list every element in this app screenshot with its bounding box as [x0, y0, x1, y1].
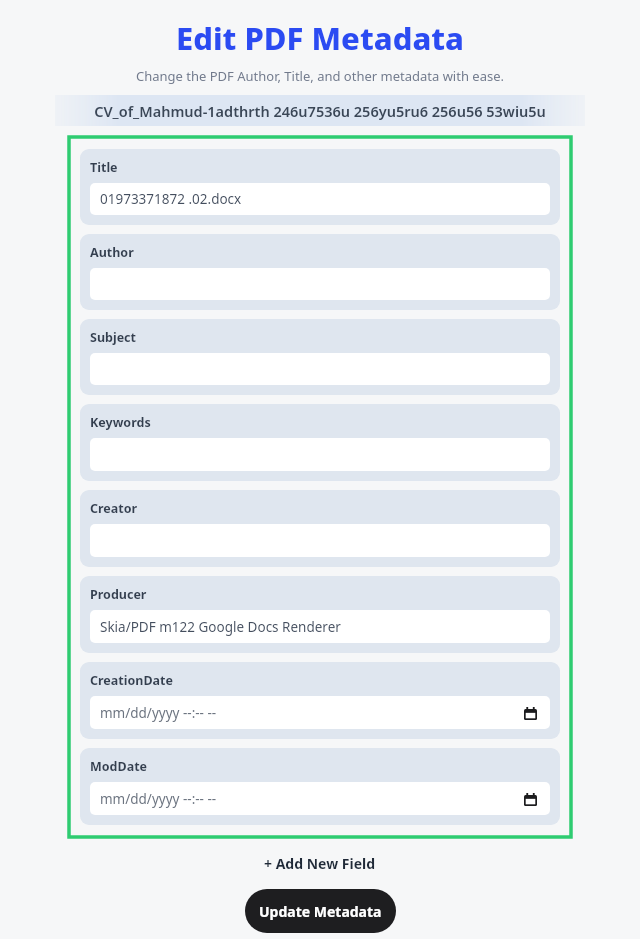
button[interactable]: Creator: [80, 490, 560, 567]
staticText: Change the PDF Author, Title, and other …: [0, 67, 640, 85]
staticText: Creator: [90, 500, 138, 517]
staticText: Skia/PDF m122 Google Docs Renderer: [100, 618, 341, 636]
staticText: Producer: [90, 586, 147, 603]
button[interactable]: Producer: [80, 576, 560, 653]
button[interactable]: Pick date: [520, 789, 540, 809]
staticText: mm/dd/yyyy --:-- --: [100, 790, 217, 808]
button[interactable]: CreationDate: [80, 662, 560, 739]
button[interactable]: + Add New Field: [256, 851, 384, 876]
staticText: 01973371872 .02.docx: [100, 190, 242, 208]
staticText: CV_of_Mahmud-1adthrth 246u7536u 256yu5ru…: [94, 101, 546, 121]
staticText: CreationDate: [90, 672, 173, 689]
button[interactable]: Keywords: [80, 404, 560, 481]
staticText: Author: [90, 244, 134, 261]
button[interactable]: Author: [80, 234, 560, 310]
staticText: + Add New Field: [264, 854, 376, 873]
button[interactable]: Title: [80, 149, 560, 225]
button[interactable]: Update Metadata: [245, 889, 396, 933]
button[interactable]: ModDate: [80, 748, 560, 825]
button[interactable]: Subject: [80, 319, 560, 395]
staticText: Subject: [90, 329, 136, 346]
staticText: ModDate: [90, 758, 148, 775]
button[interactable]: Pick date: [520, 703, 540, 723]
staticText: Title: [90, 159, 118, 176]
staticText: Keywords: [90, 414, 151, 431]
staticText: Update Metadata: [259, 902, 382, 921]
staticText: Edit PDF Metadata: [0, 17, 640, 59]
staticText: mm/dd/yyyy --:-- --: [100, 704, 217, 722]
